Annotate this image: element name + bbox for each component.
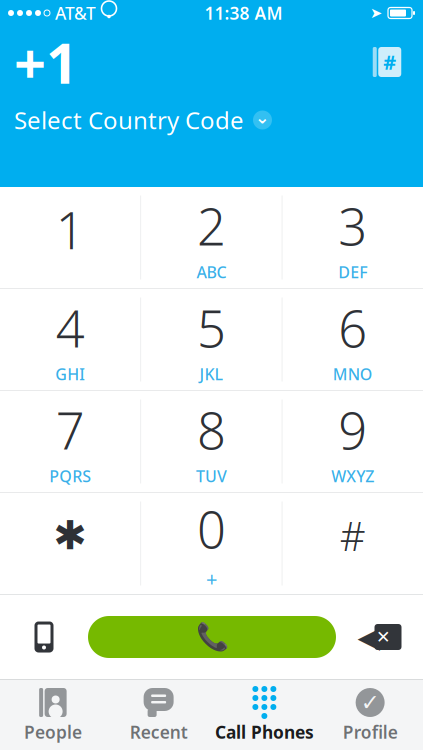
button[interactable]: 3: [283, 187, 423, 288]
staticText: JKL: [199, 363, 223, 385]
staticText: 5: [197, 294, 226, 361]
button[interactable]: Select Country Code: [14, 104, 272, 136]
button[interactable]: 2: [141, 187, 282, 288]
button[interactable]: ✱: [0, 493, 140, 594]
button[interactable]: Delete: [336, 605, 423, 669]
staticText: ✓: [361, 690, 380, 715]
staticText: PQRS: [49, 465, 91, 487]
staticText: ✱: [53, 513, 87, 558]
staticText: 3: [338, 192, 367, 259]
staticText: AT&T: [55, 1, 96, 24]
staticText: ➤: [370, 5, 382, 21]
staticText: ◀: [357, 620, 380, 654]
button[interactable]: 9: [283, 391, 423, 492]
button[interactable]: Recent: [106, 680, 212, 750]
staticText: 0: [197, 495, 226, 562]
button[interactable]: Call mobile: [0, 605, 88, 669]
staticText: ✕: [376, 627, 391, 647]
button[interactable]: 6: [283, 289, 423, 390]
staticText: 2: [197, 192, 226, 259]
staticText: People: [24, 720, 82, 743]
staticText: ABC: [196, 261, 226, 283]
staticText: 4: [56, 294, 85, 361]
button[interactable]: Contacts: [365, 40, 409, 84]
button[interactable]: 7: [0, 391, 140, 492]
staticText: 8: [197, 396, 226, 463]
staticText: 1: [56, 196, 85, 263]
button[interactable]: #: [283, 493, 423, 594]
staticText: WXYZ: [331, 465, 374, 487]
button[interactable]: Call Phones: [211, 680, 317, 750]
staticText: #: [340, 509, 366, 562]
staticText: Profile: [343, 720, 398, 743]
staticText: 7: [56, 396, 85, 463]
staticText: MNO: [333, 363, 373, 385]
staticText: 📞: [195, 622, 228, 652]
staticText: ⌄: [255, 108, 270, 127]
staticText: 9: [338, 396, 367, 463]
button[interactable]: 1: [0, 187, 140, 288]
staticText: +1: [14, 25, 78, 99]
button[interactable]: 5: [141, 289, 282, 390]
staticText: DEF: [338, 261, 367, 283]
button[interactable]: 8: [141, 391, 282, 492]
staticText: Select Country Code: [14, 104, 244, 136]
button[interactable]: People: [0, 680, 106, 750]
button[interactable]: Call: [88, 616, 336, 658]
staticText: +: [206, 565, 217, 592]
button[interactable]: 0: [141, 493, 282, 594]
staticText: Call Phones: [215, 720, 314, 743]
staticText: 11:38 AM: [204, 1, 282, 24]
button[interactable]: 4: [0, 289, 140, 390]
button[interactable]: ✓: [317, 680, 423, 750]
staticText: TUV: [196, 465, 227, 487]
staticText: GHI: [55, 363, 85, 385]
staticText: #: [383, 49, 396, 75]
staticText: Recent: [130, 720, 188, 743]
staticText: 6: [338, 294, 367, 361]
